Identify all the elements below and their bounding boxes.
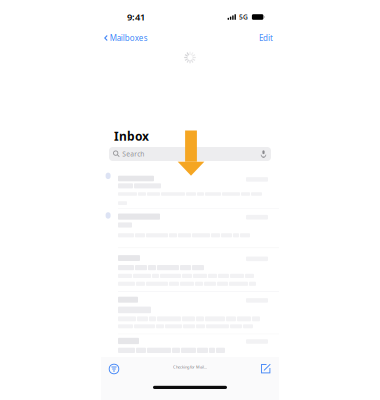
button[interactable] xyxy=(101,292,279,334)
button[interactable] xyxy=(101,209,279,248)
button[interactable] xyxy=(101,334,279,370)
staticText: Edit xyxy=(259,33,273,43)
staticText: Inbox xyxy=(114,128,149,144)
button[interactable]: Edit xyxy=(253,29,279,47)
button[interactable]: Compose xyxy=(254,356,279,378)
button[interactable]: Mailboxes xyxy=(101,29,152,47)
staticText: Search xyxy=(122,150,144,158)
button[interactable] xyxy=(101,169,279,208)
staticText: Mailboxes xyxy=(110,33,148,43)
staticText: 5G xyxy=(239,13,248,21)
button[interactable] xyxy=(101,248,279,291)
staticText: 9:41 xyxy=(127,11,145,23)
staticText: Checking for Mail... xyxy=(173,364,207,370)
button[interactable]: Filter xyxy=(101,356,126,378)
